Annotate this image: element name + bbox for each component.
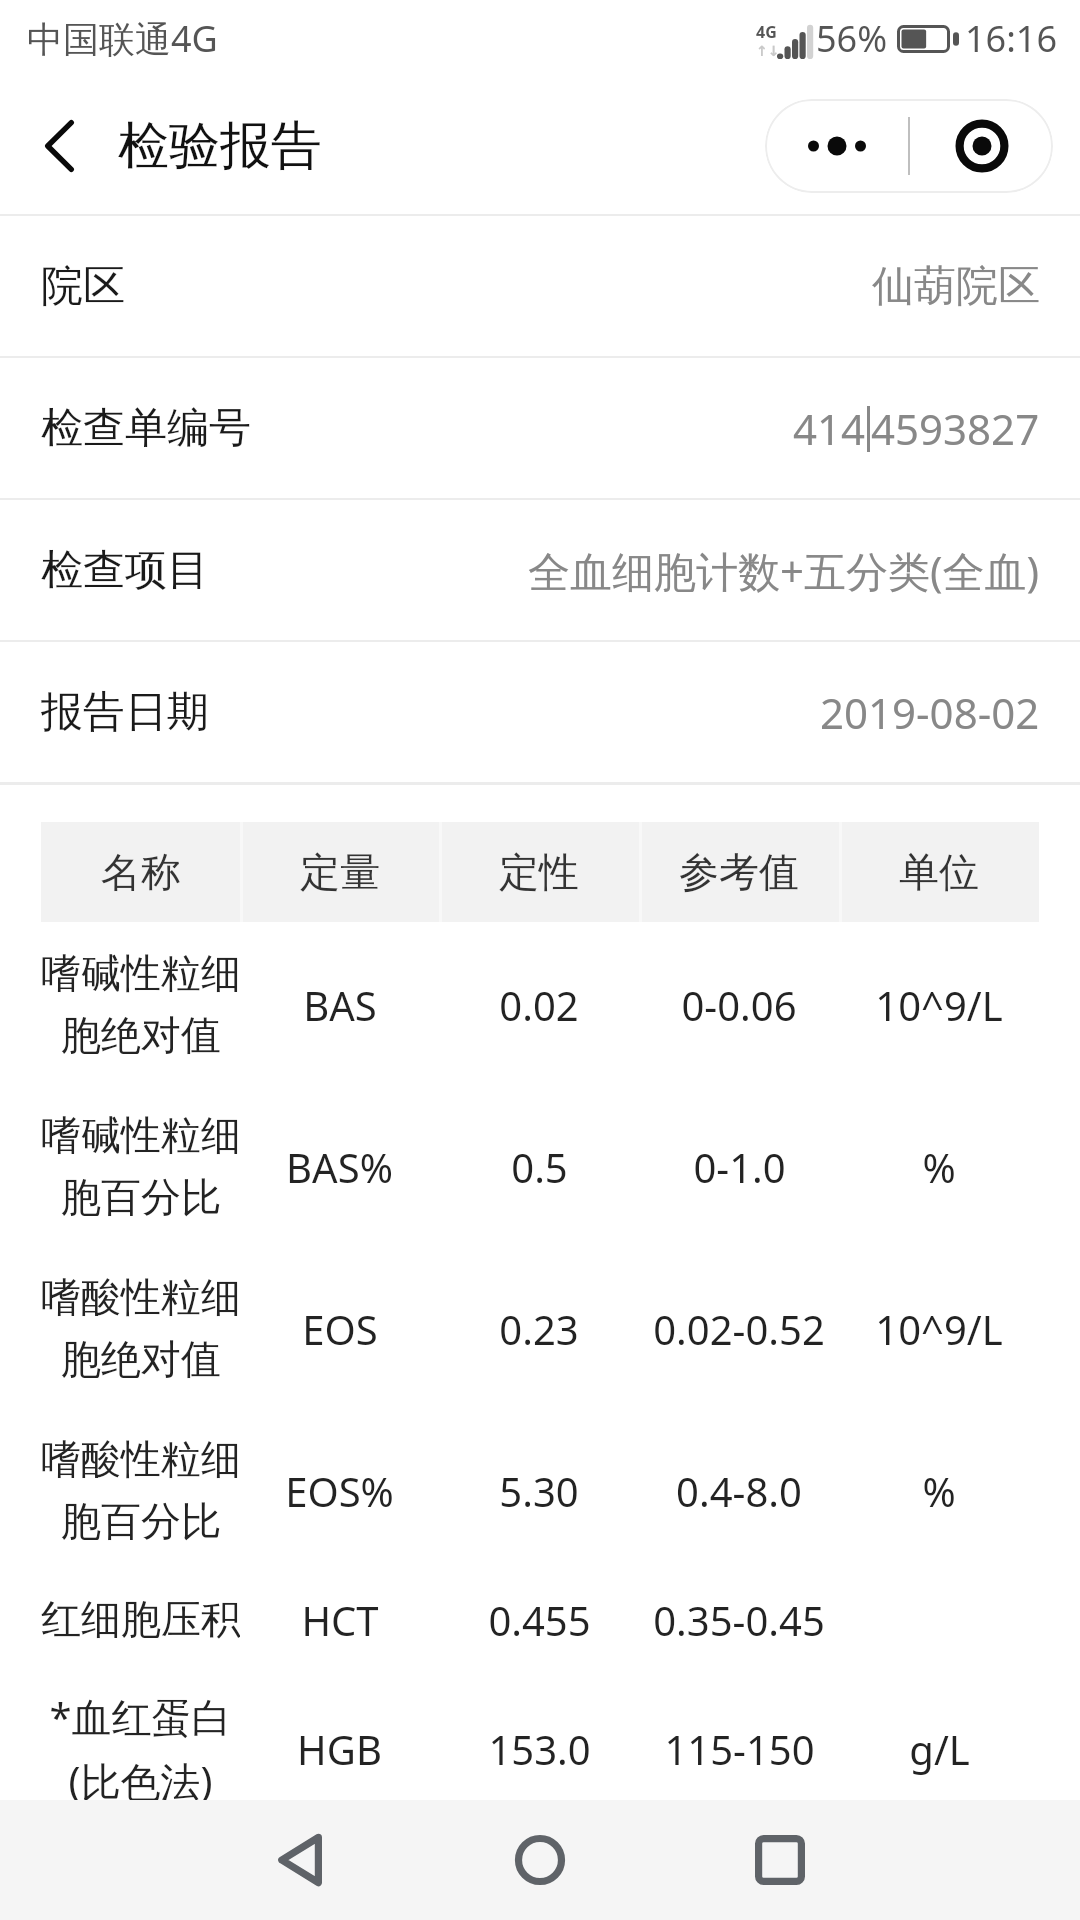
staticText: 10^9/L (875, 972, 1003, 1034)
button[interactable]: Close mini program (910, 99, 1053, 193)
button[interactable]: 报告日期 (0, 642, 1080, 782)
staticText: 0.35-0.45 (653, 1587, 825, 1649)
button[interactable]: 检查单编号 (0, 358, 1080, 498)
staticText: 0.02-0.52 (653, 1296, 825, 1358)
staticText: 0.23 (499, 1296, 579, 1358)
staticText: 红细胞压积 (41, 1587, 240, 1649)
button[interactable]: Back (219, 1800, 379, 1920)
staticText: HCT (301, 1587, 379, 1649)
staticText: 全血细胞计数+五分类(全血) (528, 542, 1040, 599)
staticText: 单位 (899, 847, 979, 897)
button[interactable]: 院区 (0, 216, 1080, 356)
staticText: 0.4-8.0 (676, 1458, 802, 1520)
staticText: 嗜碱性粒细 胞绝对值 (41, 941, 240, 1065)
staticText: 16:16 (965, 14, 1058, 63)
staticText: EOS (302, 1296, 378, 1358)
button[interactable]: Home (460, 1800, 620, 1920)
staticText: 4593827 (871, 400, 1040, 457)
button[interactable]: Back (0, 76, 119, 216)
staticText: 院区 (41, 260, 125, 313)
staticText: 5.30 (499, 1458, 579, 1520)
staticText: 报告日期 (41, 686, 209, 739)
staticText: BAS% (286, 1134, 393, 1196)
button[interactable]: Recent apps (700, 1800, 860, 1920)
staticText: ↑↓ (756, 43, 780, 59)
staticText: % (922, 1458, 956, 1520)
staticText: 定量 (300, 847, 380, 897)
staticText: 10^9/L (875, 1296, 1003, 1358)
staticText: 嗜碱性粒细 胞百分比 (41, 1103, 240, 1227)
staticText: 定性 (499, 847, 579, 897)
staticText: 0.02 (499, 972, 579, 1034)
staticText: 参考值 (679, 847, 799, 897)
staticText: 嗜酸性粒细 胞百分比 (41, 1427, 240, 1551)
staticText: 0-1.0 (693, 1134, 786, 1196)
staticText: 0-0.06 (681, 972, 797, 1034)
staticText: 56% (816, 14, 888, 63)
staticText: 检查单编号 (41, 402, 251, 455)
staticText: 0.5 (511, 1134, 568, 1196)
staticText: 4G (756, 21, 777, 43)
staticText: 嗜酸性粒细 胞绝对值 (41, 1265, 240, 1389)
staticText: 2019-08-02 (820, 684, 1040, 741)
staticText: 检查项目 (41, 544, 209, 597)
staticText: 名称 (101, 847, 181, 897)
staticText: HGB (297, 1716, 382, 1778)
staticText: 中国联通4G (27, 14, 218, 63)
staticText: g/L (909, 1716, 970, 1778)
staticText: EOS% (285, 1458, 394, 1520)
button[interactable]: More options (765, 99, 908, 193)
staticText: *血红蛋白 (比色法) (49, 1683, 232, 1811)
staticText: 检验报告 (118, 114, 322, 178)
button[interactable]: 检查项目 (0, 500, 1080, 640)
staticText: 0.455 (488, 1587, 591, 1649)
staticText: 414 (793, 400, 866, 457)
staticText: BAS (303, 972, 377, 1034)
staticText: % (922, 1134, 956, 1196)
staticText: 仙葫院区 (872, 260, 1040, 313)
staticText: 153.0 (488, 1716, 591, 1778)
staticText: 115-150 (664, 1716, 815, 1778)
